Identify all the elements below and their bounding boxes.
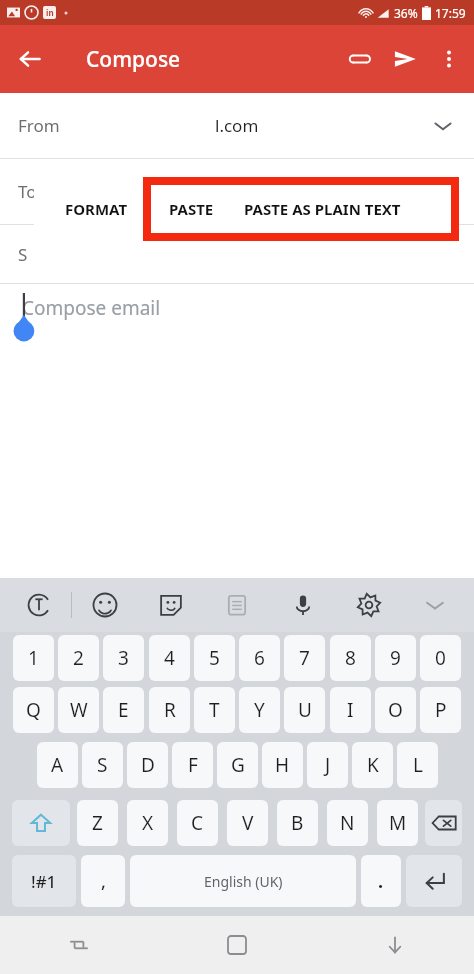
- staticText: W: [70, 697, 88, 723]
- button[interactable]: I: [330, 687, 371, 733]
- staticText: PASTE AS PLAIN TEXT: [244, 199, 401, 219]
- button[interactable]: M: [377, 800, 418, 846]
- button[interactable]: Q: [13, 687, 54, 733]
- button[interactable]: Hide keyboard: [316, 916, 474, 974]
- staticText: B: [291, 810, 304, 836]
- button[interactable]: 6: [239, 635, 280, 681]
- button[interactable]: .: [361, 855, 401, 907]
- button[interactable]: 9: [375, 635, 416, 681]
- button[interactable]: A: [37, 742, 78, 788]
- button[interactable]: Shift: [12, 800, 70, 846]
- button[interactable]: O: [375, 687, 416, 733]
- staticText: 4: [164, 645, 175, 671]
- staticText: Compose email: [22, 295, 161, 321]
- button[interactable]: L: [397, 742, 438, 788]
- button[interactable]: FORMAT: [34, 183, 159, 235]
- button[interactable]: P: [420, 687, 461, 733]
- staticText: C: [191, 810, 204, 836]
- button[interactable]: R: [149, 687, 190, 733]
- staticText: From: [18, 114, 60, 137]
- button[interactable]: E: [103, 687, 144, 733]
- button[interactable]: Recent apps: [0, 916, 158, 974]
- button[interactable]: To: [0, 159, 474, 224]
- staticText: H: [275, 752, 290, 778]
- staticText: English (UK): [204, 872, 283, 891]
- staticText: L: [413, 752, 423, 778]
- staticText: Compose: [86, 45, 181, 74]
- button[interactable]: U: [284, 687, 325, 733]
- button[interactable]: K: [352, 742, 393, 788]
- button[interactable]: Send: [382, 36, 428, 82]
- staticText: PASTE: [169, 199, 214, 219]
- button[interactable]: T: [194, 687, 235, 733]
- button[interactable]: D: [127, 742, 168, 788]
- staticText: 2: [73, 645, 84, 671]
- button[interactable]: Settings: [336, 578, 402, 632]
- staticText: 8: [345, 645, 356, 671]
- button[interactable]: F: [172, 742, 213, 788]
- staticText: R: [164, 697, 176, 723]
- button[interactable]: X: [127, 800, 168, 846]
- button[interactable]: Home: [158, 916, 316, 974]
- staticText: J: [325, 752, 331, 778]
- staticText: Q: [26, 697, 41, 723]
- button[interactable]: More options: [428, 38, 470, 80]
- button[interactable]: 8: [330, 635, 371, 681]
- staticText: Y: [254, 697, 265, 723]
- button[interactable]: N: [327, 800, 368, 846]
- staticText: 3: [118, 645, 129, 671]
- staticText: in: [46, 7, 54, 18]
- staticText: ,: [101, 869, 106, 894]
- staticText: 6: [254, 645, 265, 671]
- button[interactable]: Translate: [6, 578, 71, 632]
- staticText: !#1: [31, 870, 57, 893]
- button[interactable]: Collapse: [402, 578, 468, 632]
- button[interactable]: Back: [6, 35, 54, 83]
- staticText: .: [378, 869, 384, 894]
- staticText: 9: [390, 645, 401, 671]
- button[interactable]: S: [82, 742, 123, 788]
- button[interactable]: 1: [13, 635, 54, 681]
- button[interactable]: G: [217, 742, 258, 788]
- staticText: 7: [299, 645, 310, 671]
- staticText: S: [18, 243, 28, 266]
- button[interactable]: Attach file: [336, 36, 382, 82]
- staticText: To: [18, 180, 37, 203]
- button[interactable]: Voice input: [270, 578, 336, 632]
- button[interactable]: Clipboard: [204, 578, 270, 632]
- button[interactable]: 0: [420, 635, 461, 681]
- button[interactable]: H: [262, 742, 303, 788]
- button[interactable]: 7: [284, 635, 325, 681]
- button[interactable]: Y: [239, 687, 280, 733]
- button[interactable]: B: [277, 800, 318, 846]
- staticText: G: [231, 752, 245, 778]
- button[interactable]: 2: [58, 635, 99, 681]
- button[interactable]: C: [177, 800, 218, 846]
- staticText: FORMAT: [65, 199, 128, 219]
- button[interactable]: W: [58, 687, 99, 733]
- button[interactable]: From: [0, 93, 474, 158]
- button[interactable]: J: [307, 742, 348, 788]
- button[interactable]: PASTE AS PLAIN TEXT: [232, 185, 413, 233]
- button[interactable]: !#1: [12, 855, 76, 907]
- button[interactable]: Emoji: [72, 578, 138, 632]
- button[interactable]: Stickers: [138, 578, 204, 632]
- button[interactable]: 3: [103, 635, 144, 681]
- staticText: K: [367, 752, 379, 778]
- button[interactable]: English (UK): [130, 855, 356, 907]
- staticText: V: [242, 810, 254, 836]
- button[interactable]: ,: [81, 855, 125, 907]
- button[interactable]: Backspace: [425, 800, 462, 846]
- staticText: F: [188, 752, 198, 778]
- button[interactable]: 4: [149, 635, 190, 681]
- button[interactable]: V: [227, 800, 268, 846]
- staticText: E: [118, 697, 129, 723]
- button[interactable]: 5: [194, 635, 235, 681]
- button[interactable]: Enter: [406, 855, 462, 907]
- staticText: D: [141, 752, 155, 778]
- staticText: P: [435, 697, 447, 723]
- staticText: N: [340, 810, 355, 836]
- button[interactable]: PASTE: [151, 185, 232, 233]
- staticText: S: [97, 752, 108, 778]
- button[interactable]: Z: [77, 800, 118, 846]
